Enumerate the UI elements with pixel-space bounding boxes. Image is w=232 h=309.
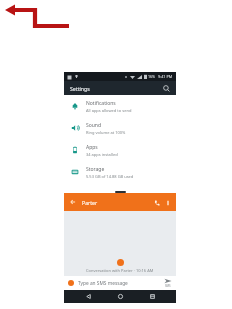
staticText: Apps	[86, 144, 98, 151]
button[interactable]	[115, 191, 126, 193]
staticText: Storage	[86, 166, 105, 173]
button[interactable]: Storage	[64, 161, 176, 183]
staticText: Ring volume at 100%	[86, 130, 126, 135]
button[interactable]: More options	[163, 198, 172, 207]
button[interactable]: Apps	[64, 139, 176, 161]
staticText: 5.53 GB of 14.88 GB used	[86, 174, 134, 179]
staticText: All apps allowed to send	[86, 108, 132, 113]
staticText: Conversation with Parter · 10:16 AM	[86, 268, 154, 273]
button[interactable]: Notifications	[64, 95, 176, 117]
staticText: Settings	[70, 85, 90, 92]
staticText: Notifications	[86, 100, 116, 107]
button[interactable]: Send SMS	[164, 278, 172, 288]
staticText: Sound	[86, 122, 102, 129]
button[interactable]: Recent apps	[144, 290, 160, 303]
staticText: 34 apps installed	[86, 152, 118, 157]
button[interactable]: Search	[161, 83, 171, 93]
button[interactable]: Call	[151, 197, 162, 208]
button[interactable]: Back	[68, 197, 78, 207]
button[interactable]: Home	[112, 290, 128, 303]
button[interactable]: Back	[80, 290, 96, 303]
staticText: 16%	[148, 74, 156, 79]
staticText: Parter	[82, 199, 98, 206]
button[interactable]: Sound	[64, 117, 176, 139]
button[interactable]	[68, 280, 74, 286]
staticText: 9:41 PM	[158, 74, 173, 79]
staticText: SMS	[165, 284, 171, 288]
staticText: Type an SMS message	[78, 280, 128, 287]
